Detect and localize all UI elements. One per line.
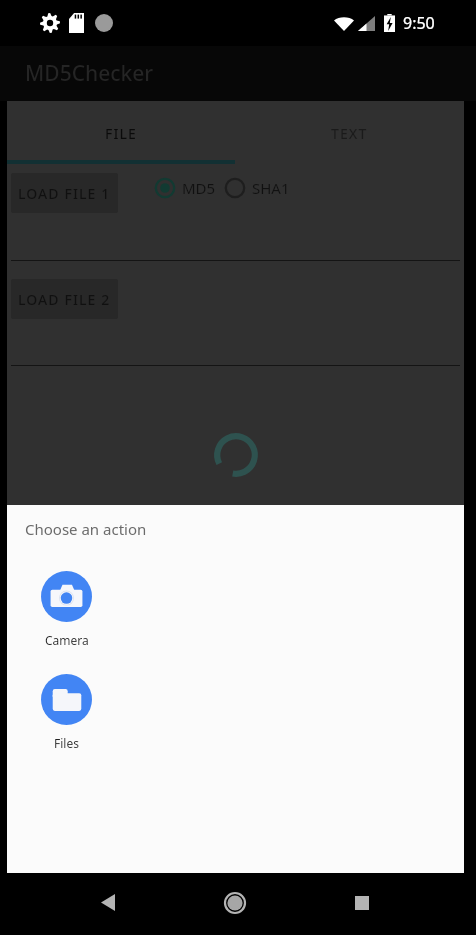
staticText: MD5Checker bbox=[25, 59, 154, 88]
button[interactable]: Recents bbox=[340, 873, 384, 932]
button[interactable]: LOAD FILE 1 bbox=[11, 173, 118, 213]
button[interactable]: Files bbox=[41, 674, 92, 751]
staticText: LOAD FILE 1 bbox=[18, 184, 111, 203]
staticText: Camera bbox=[45, 632, 89, 648]
staticText: LOAD FILE 2 bbox=[18, 290, 111, 309]
staticText: MD5 bbox=[182, 178, 216, 198]
button[interactable]: FILE bbox=[7, 101, 235, 166]
staticText: TEXT bbox=[331, 124, 368, 143]
button[interactable]: LOAD FILE 2 bbox=[11, 279, 118, 319]
staticText: 9:50 bbox=[403, 12, 435, 34]
staticText: Files bbox=[54, 735, 79, 751]
staticText: Choose an action bbox=[25, 519, 147, 539]
button[interactable]: Camera bbox=[41, 571, 92, 648]
button[interactable]: SHA1 bbox=[224, 173, 290, 203]
button[interactable]: Back bbox=[86, 873, 130, 932]
staticText: FILE bbox=[105, 124, 138, 143]
button[interactable]: Home bbox=[213, 873, 257, 932]
staticText: SHA1 bbox=[252, 178, 290, 198]
button[interactable]: MD5 bbox=[154, 173, 216, 203]
